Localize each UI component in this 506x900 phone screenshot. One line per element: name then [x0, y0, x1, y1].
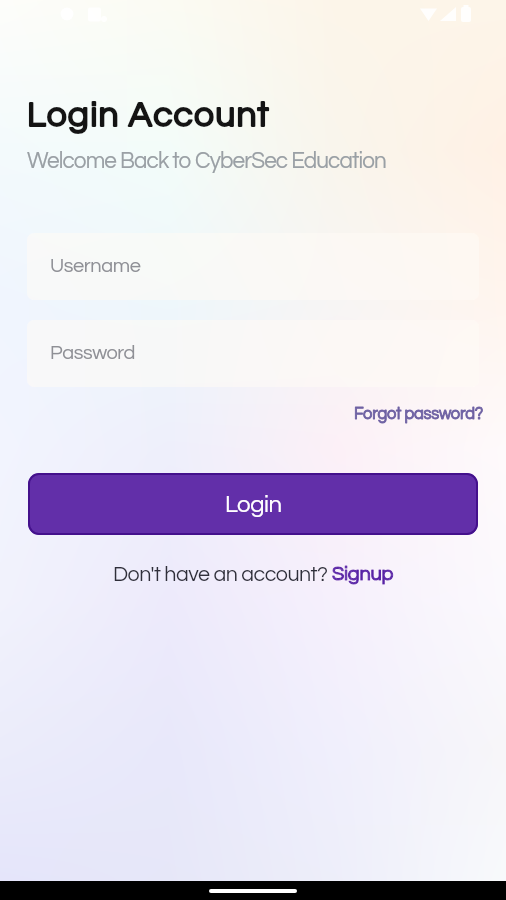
staticText: Forgot password?	[354, 405, 483, 422]
staticText: Signup	[332, 564, 394, 585]
staticText: Login	[225, 492, 282, 517]
staticText: Welcome Back to CyberSec Education	[27, 150, 386, 173]
staticText: Login Account	[27, 97, 271, 134]
button[interactable]: Login	[28, 473, 478, 535]
staticText: Login Account	[27, 97, 271, 134]
button[interactable]: Signup	[332, 564, 394, 585]
button[interactable]: Username	[27, 233, 479, 300]
staticText: Forgot password?	[354, 405, 483, 422]
staticText: Password	[50, 343, 136, 364]
button[interactable]: Password	[27, 320, 479, 387]
staticText: Signup	[332, 564, 394, 585]
button[interactable]: Forgot password?	[348, 399, 489, 428]
staticText: Username	[50, 256, 141, 277]
staticText: Don't have an account?	[113, 563, 332, 585]
